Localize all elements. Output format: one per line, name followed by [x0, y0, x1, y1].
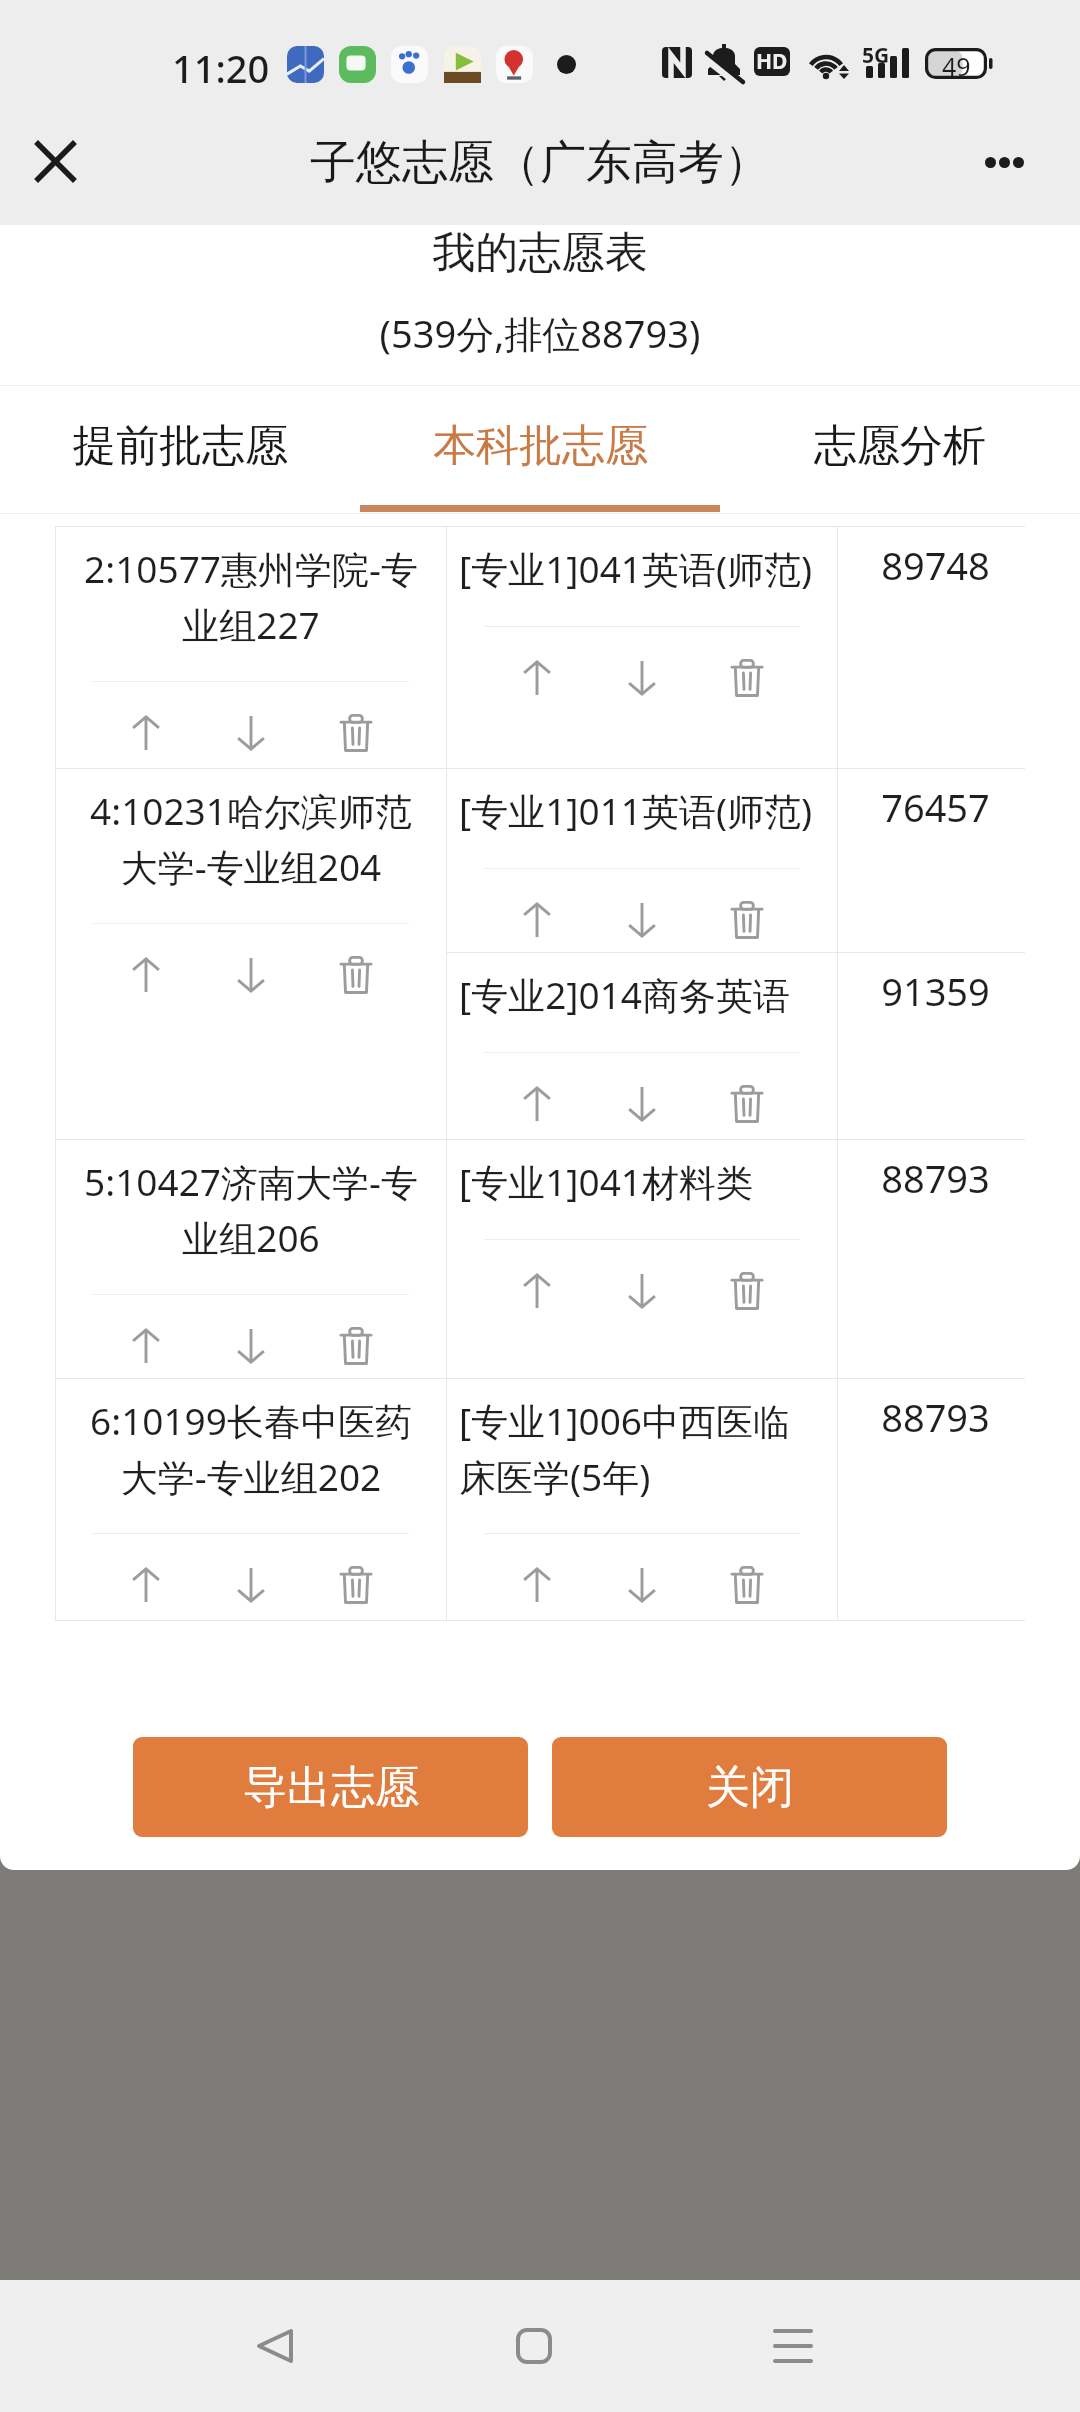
button[interactable]: Move up	[118, 1318, 174, 1374]
button[interactable]: Move up	[118, 947, 174, 1003]
staticText: 88793	[842, 1152, 1029, 1204]
button[interactable]: Home	[464, 2280, 604, 2412]
staticText: 76457	[842, 781, 1029, 833]
button[interactable]: More options	[985, 157, 1024, 168]
button[interactable]: Delete	[719, 1076, 775, 1132]
staticText: [专业1]011英语(师范)	[459, 785, 823, 836]
button[interactable]: Delete	[328, 947, 384, 1003]
button[interactable]: Delete	[328, 705, 384, 761]
button[interactable]: Move down	[614, 650, 670, 706]
staticText: HD	[756, 47, 788, 76]
staticText: 6:10199长春中医药 大学-专业组202	[70, 1395, 432, 1502]
button[interactable]: Move up	[509, 1076, 565, 1132]
button[interactable]: Recents	[723, 2280, 863, 2412]
button[interactable]: Move up	[509, 892, 565, 948]
staticText: 49	[942, 49, 971, 80]
staticText: 91359	[842, 965, 1029, 1017]
button[interactable]: Delete	[719, 1263, 775, 1319]
button[interactable]: Delete	[719, 1557, 775, 1613]
staticText: [专业2]014商务英语	[459, 969, 823, 1020]
staticText: 志愿分析	[814, 419, 986, 473]
staticText: 2:10577惠州学院-专 业组227	[70, 543, 432, 650]
staticText: [专业1]006中西医临 床医学(5年)	[459, 1395, 823, 1502]
button[interactable]: Move down	[223, 947, 279, 1003]
staticText: [专业1]041材料类	[459, 1156, 823, 1207]
button[interactable]: Move down	[614, 1263, 670, 1319]
staticText: [专业1]041英语(师范)	[459, 543, 823, 594]
staticText: 提前批志愿	[73, 419, 288, 473]
staticText: 关闭	[706, 1760, 794, 1815]
button[interactable]: Move down	[614, 1076, 670, 1132]
button[interactable]: 本科批志愿	[360, 386, 720, 513]
button[interactable]: Move up	[509, 1557, 565, 1613]
button[interactable]: 关闭	[552, 1737, 947, 1837]
button[interactable]: 志愿分析	[720, 386, 1080, 513]
button[interactable]: Move down	[614, 1557, 670, 1613]
staticText: 5:10427济南大学-专 业组206	[70, 1156, 432, 1263]
button[interactable]: 提前批志愿	[0, 386, 360, 513]
staticText: 5G	[862, 41, 890, 67]
button[interactable]: Move down	[614, 892, 670, 948]
staticText: (539分,排位88793)	[0, 307, 1080, 359]
staticText: 子悠志愿（广东高考）	[310, 134, 770, 192]
button[interactable]: Delete	[719, 650, 775, 706]
button[interactable]: Move up	[118, 1557, 174, 1613]
staticText: 89748	[842, 539, 1029, 591]
button[interactable]: Close	[19, 125, 91, 197]
button[interactable]: 导出志愿	[133, 1737, 528, 1837]
staticText: 88793	[842, 1391, 1029, 1443]
button[interactable]: Move up	[509, 1263, 565, 1319]
button[interactable]: Move up	[509, 650, 565, 706]
button[interactable]: Move down	[223, 1318, 279, 1374]
staticText: 本科批志愿	[433, 419, 648, 473]
button[interactable]: Delete	[328, 1318, 384, 1374]
button[interactable]: Delete	[328, 1557, 384, 1613]
button[interactable]: Move down	[223, 705, 279, 761]
button[interactable]: Move down	[223, 1557, 279, 1613]
button[interactable]: Back	[205, 2280, 345, 2412]
staticText: 4:10231哈尔滨师范 大学-专业组204	[70, 785, 432, 892]
staticText: 我的志愿表	[0, 226, 1080, 280]
staticText: 导出志愿	[243, 1760, 419, 1815]
button[interactable]: Delete	[719, 892, 775, 948]
button[interactable]: Move up	[118, 705, 174, 761]
staticText: 11:20	[172, 42, 270, 94]
